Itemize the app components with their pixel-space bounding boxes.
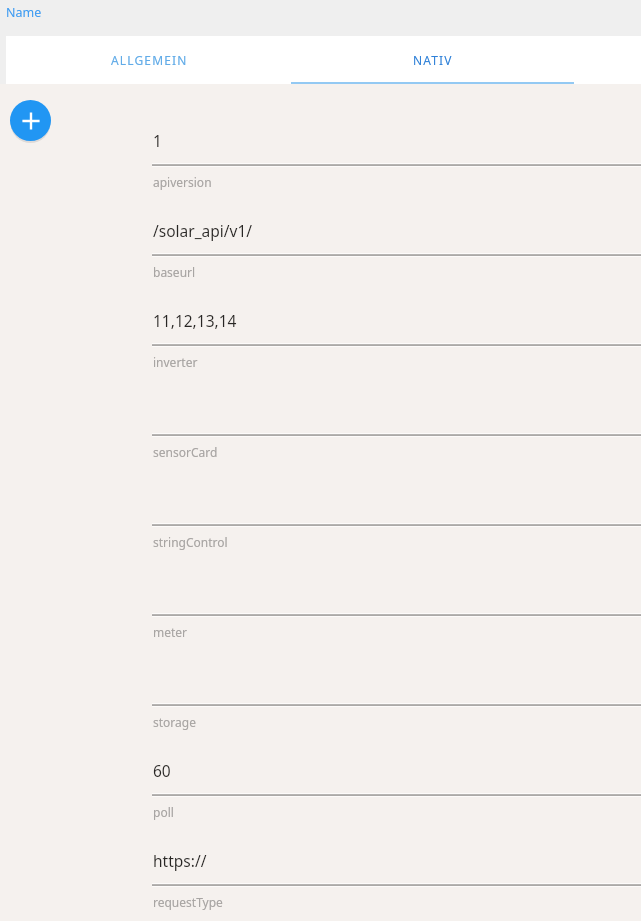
staticText: poll <box>153 804 174 820</box>
staticText: sensorCard <box>153 444 218 460</box>
staticText: baseurl <box>153 264 196 280</box>
button[interactable]: storage <box>0 644 641 734</box>
staticText: https:// <box>153 850 207 871</box>
staticText: 1 <box>153 130 162 151</box>
staticText: apiversion <box>153 174 212 190</box>
staticText: 11,12,13,14 <box>153 310 237 331</box>
staticText: stringControl <box>153 534 228 550</box>
staticText: Name <box>6 4 42 21</box>
staticText: NATIV <box>413 52 453 68</box>
staticText: requestType <box>153 894 223 910</box>
staticText: ALLGEMEIN <box>111 52 188 68</box>
button[interactable]: Add <box>10 100 51 141</box>
button[interactable]: /solar_api/v1/ <box>0 194 641 284</box>
button[interactable]: 1 <box>0 104 641 194</box>
button[interactable]: ALLGEMEIN <box>8 36 291 84</box>
staticText: inverter <box>153 354 198 370</box>
button[interactable]: 60 <box>0 734 641 824</box>
button[interactable]: 11,12,13,14 <box>0 284 641 374</box>
staticText: meter <box>153 624 188 640</box>
button[interactable]: meter <box>0 554 641 644</box>
button[interactable]: https:// <box>0 824 641 914</box>
staticText: storage <box>153 714 196 730</box>
staticText: /solar_api/v1/ <box>153 220 253 241</box>
staticText: 60 <box>153 760 171 781</box>
button[interactable]: NATIV <box>291 36 574 84</box>
button[interactable]: stringControl <box>0 464 641 554</box>
button[interactable]: sensorCard <box>0 374 641 464</box>
